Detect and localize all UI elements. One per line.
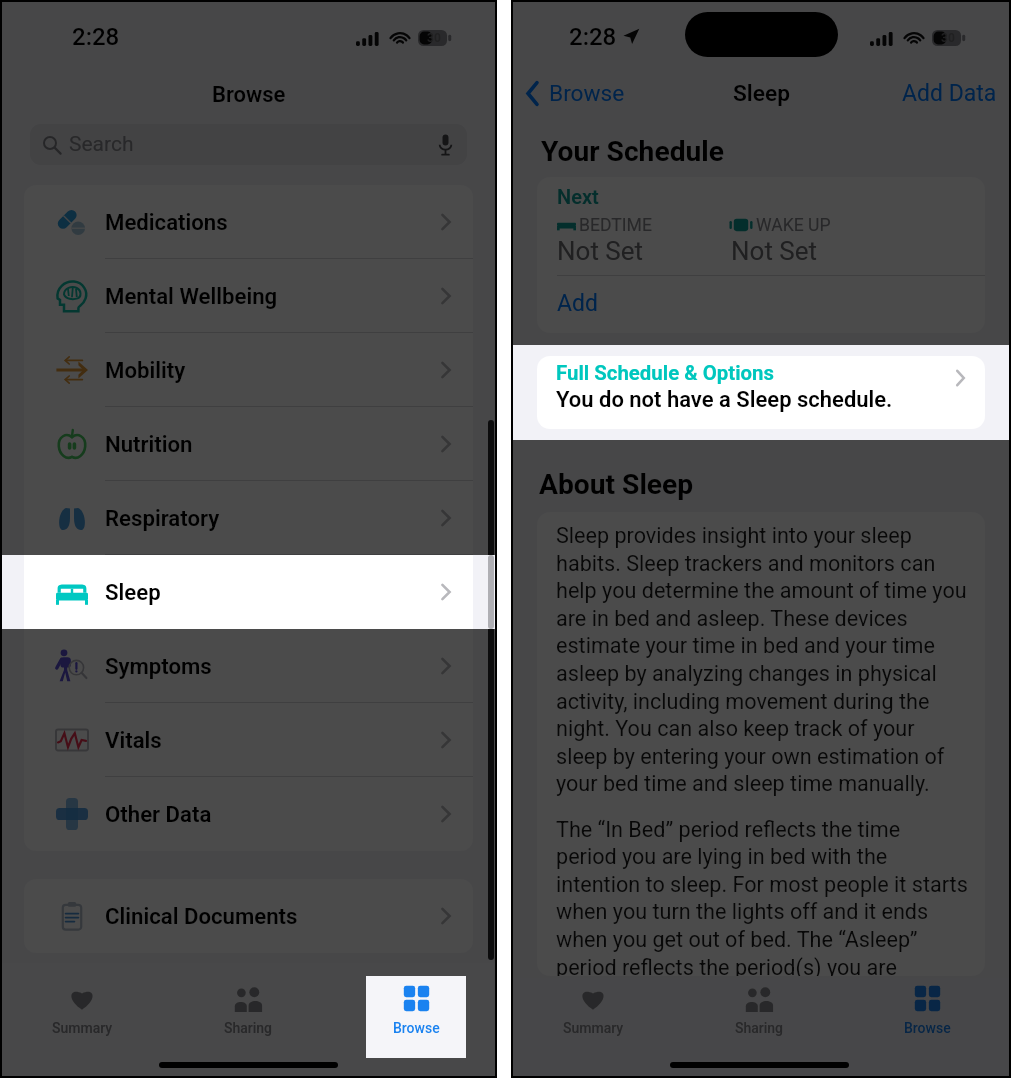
staticText: Respiratory: [105, 505, 220, 531]
staticText: Summary: [52, 1020, 113, 1036]
button[interactable]: Sleep: [24, 555, 473, 629]
staticText: Symptoms: [105, 653, 212, 679]
staticText: period you are lying in bed with the: [556, 844, 888, 869]
staticText: Sharing: [224, 1020, 273, 1036]
staticText: Medications: [105, 209, 228, 235]
staticText: Your Schedule: [541, 135, 724, 168]
button[interactable]: Vitals: [24, 703, 473, 777]
button[interactable]: Browse: [366, 976, 466, 1058]
button[interactable]: Clinical Documents: [24, 879, 473, 953]
button[interactable]: Sleep: [24, 555, 473, 629]
staticText: 30: [427, 31, 441, 45]
button[interactable]: Full Schedule & Options: [537, 356, 985, 429]
staticText: Sharing: [735, 1020, 784, 1036]
button[interactable]: Voice search: [428, 128, 462, 162]
button[interactable]: Sharing: [198, 976, 298, 1058]
button[interactable]: Other Data: [24, 777, 473, 851]
button[interactable]: Browse: [877, 976, 977, 1058]
staticText: Vitals: [105, 727, 162, 753]
staticText: Clinical Documents: [105, 903, 298, 929]
staticText: Sleep: [105, 579, 161, 605]
staticText: when you get out of bed. The “Asleep”: [556, 927, 918, 952]
staticText: Browse: [393, 1020, 440, 1036]
staticText: The “In Bed” period reflects the time: [556, 817, 901, 842]
button[interactable]: Browse: [525, 80, 625, 107]
staticText: activity, including movement during the: [556, 689, 930, 714]
staticText: You do not have a Sleep schedule.: [556, 387, 893, 413]
staticText: Browse: [212, 82, 286, 108]
staticText: Browse: [393, 1020, 440, 1036]
staticText: Sleep provides insight into your sleep: [556, 523, 912, 548]
button[interactable]: Browse: [366, 976, 466, 1058]
staticText: sleep by entering your own estimation of: [556, 744, 945, 769]
staticText: night. You can also keep track of your: [556, 716, 915, 741]
staticText: 2:28: [72, 23, 120, 51]
staticText: Other Data: [105, 801, 212, 827]
staticText: BEDTIME: [579, 215, 652, 236]
staticText: Not Set: [731, 236, 818, 266]
staticText: Browse: [904, 1020, 951, 1036]
staticText: are in bed and asleep. These devices: [556, 606, 908, 631]
button[interactable]: Mobility: [24, 333, 473, 407]
button[interactable]: Summary: [32, 976, 132, 1058]
staticText: Search: [69, 132, 134, 157]
staticText: Add: [557, 290, 598, 317]
staticText: intention to sleep. For most people it s…: [556, 872, 968, 897]
staticText: when you turn the lights off and it ends: [556, 899, 929, 924]
staticText: Next: [557, 185, 599, 208]
staticText: WAKE UP: [756, 215, 831, 236]
staticText: Mental Wellbeing: [105, 283, 278, 309]
staticText: Summary: [563, 1020, 624, 1036]
button[interactable]: Nutrition: [24, 407, 473, 481]
staticText: Nutrition: [105, 431, 193, 457]
staticText: period reflects the period(s) you are: [556, 955, 897, 976]
staticText: Sleep: [105, 579, 161, 605]
staticText: asleep by analyzing changes in physical: [556, 661, 937, 686]
button[interactable]: Search: [30, 124, 467, 165]
staticText: Mobility: [105, 357, 186, 383]
button[interactable]: Summary: [543, 976, 643, 1058]
button[interactable]: Sharing: [709, 976, 809, 1058]
staticText: 30: [941, 31, 955, 45]
staticText: 2:28: [569, 23, 617, 51]
button[interactable]: Add Data: [902, 80, 997, 107]
staticText: estimate your time in bed and your time: [556, 633, 935, 658]
button[interactable]: Add: [557, 290, 598, 317]
staticText: Browse: [549, 80, 625, 107]
button[interactable]: Respiratory: [24, 481, 473, 555]
staticText: help you determine the amount of time yo…: [556, 578, 967, 603]
staticText: Not Set: [557, 236, 644, 266]
staticText: Full Schedule & Options: [556, 361, 774, 385]
staticText: habits. Sleep trackers and monitors can: [556, 551, 936, 576]
button[interactable]: Symptoms: [24, 629, 473, 703]
button[interactable]: Mental Wellbeing: [24, 259, 473, 333]
button[interactable]: Medications: [24, 185, 473, 259]
staticText: About Sleep: [539, 468, 694, 501]
staticText: your bed time and sleep time manually.: [556, 771, 930, 796]
staticText: Sleep: [733, 80, 790, 107]
